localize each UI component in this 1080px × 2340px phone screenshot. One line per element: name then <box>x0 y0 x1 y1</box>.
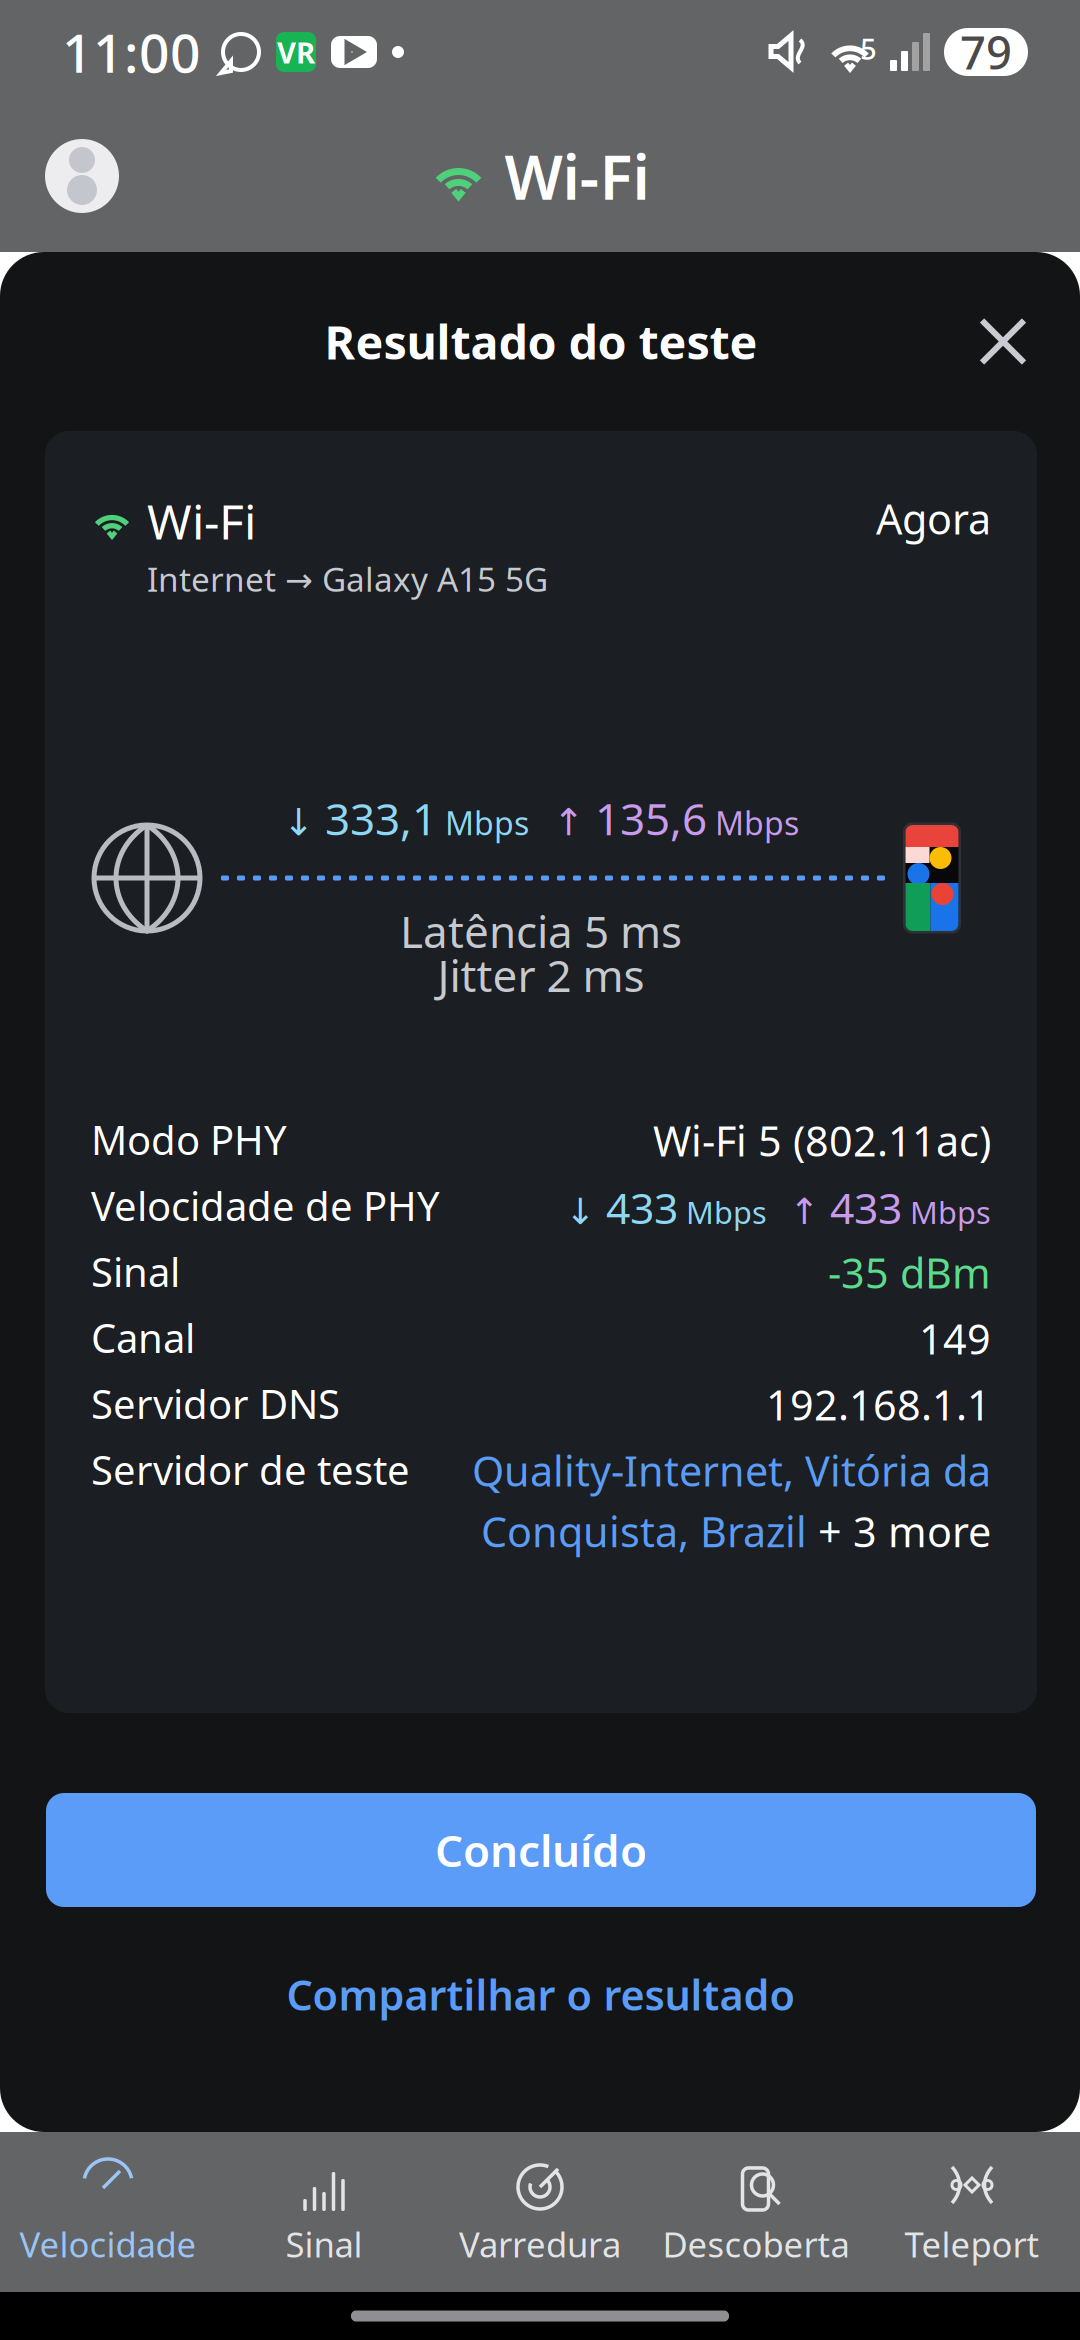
staticText: 333,1 <box>314 789 437 847</box>
staticText: Servidor de teste <box>91 1443 410 1496</box>
staticText: Mbps <box>678 1192 767 1232</box>
button[interactable]: Close <box>963 301 1043 381</box>
button[interactable]: Varredura <box>432 2132 648 2292</box>
staticText: Mbps <box>707 802 799 844</box>
staticText: 433 <box>819 1179 902 1236</box>
button[interactable]: Sinal <box>216 2132 432 2292</box>
staticText: Canal <box>91 1311 195 1364</box>
staticText: Agora <box>876 491 991 546</box>
staticText: Varredura <box>459 2221 621 2267</box>
staticText: Teleport <box>904 2221 1039 2267</box>
staticText: 433 <box>595 1179 678 1236</box>
staticText: Latência 5 ms <box>400 902 682 960</box>
staticText: Velocidade de PHY <box>91 1179 440 1232</box>
staticText: ↑ <box>767 1191 819 1232</box>
staticText: Modo PHY <box>91 1113 287 1166</box>
staticText: Sinal <box>91 1245 180 1298</box>
staticText: Concluído <box>435 1821 647 1879</box>
button[interactable]: Velocidade <box>0 2132 216 2292</box>
staticText: 79 <box>960 22 1012 82</box>
staticText: Servidor DNS <box>91 1377 340 1430</box>
staticText: Conquista, Brazil <box>481 1504 807 1559</box>
staticText: Resultado do teste <box>324 310 757 372</box>
staticText: ↓ <box>565 1191 595 1232</box>
staticText: Wi-Fi 5 (802.11ac) <box>653 1113 991 1168</box>
staticText: Mbps <box>437 802 529 844</box>
staticText: Mbps <box>902 1192 991 1232</box>
button[interactable]: Teleport <box>864 2132 1080 2292</box>
staticText: Compartilhar o resultado <box>286 1967 795 2022</box>
staticText: -35 dBm <box>828 1245 991 1300</box>
staticText: Descoberta <box>662 2221 849 2267</box>
staticText: 192.168.1.1 <box>766 1377 991 1432</box>
staticText: Jitter 2 ms <box>437 946 644 1004</box>
button[interactable]: Concluído <box>46 1793 1036 1907</box>
staticText: 11:00 <box>62 17 201 87</box>
staticText: + 3 more <box>807 1504 991 1559</box>
staticText: Sinal <box>285 2221 362 2267</box>
staticText: Wi-Fi <box>504 135 649 217</box>
staticText: 149 <box>919 1311 991 1366</box>
staticText: 135,6 <box>584 789 707 847</box>
button[interactable]: Compartilhar o resultado <box>46 1907 1036 2037</box>
staticText: VR <box>277 32 315 71</box>
staticText: ↓ <box>283 801 314 844</box>
staticText: Wi-Fi <box>147 489 256 553</box>
staticText: ↑ <box>529 801 584 844</box>
staticText: Quality-Internet, Vitória da <box>472 1443 991 1498</box>
staticText: Internet → Galaxy A15 5G <box>147 557 548 601</box>
button[interactable]: Descoberta <box>648 2132 864 2292</box>
button[interactable]: Account <box>45 139 119 213</box>
staticText: Velocidade <box>19 2221 196 2267</box>
staticText: 5 <box>860 29 877 68</box>
